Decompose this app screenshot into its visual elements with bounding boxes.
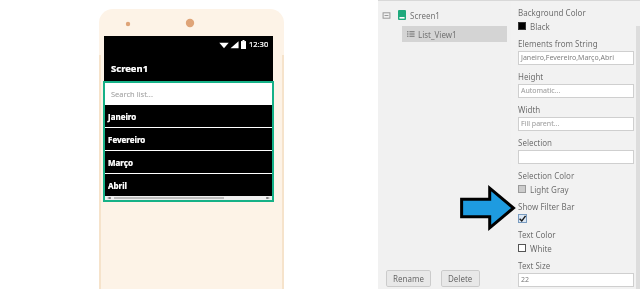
button[interactable]: Fevereiro — [105, 128, 272, 150]
staticText: 12:30 — [249, 39, 269, 49]
button[interactable]: Abril — [105, 174, 272, 196]
staticText: Março — [108, 157, 133, 168]
button[interactable]: List_View1 — [402, 26, 507, 42]
staticText: Automatic... — [521, 86, 561, 96]
staticText: Screen1 — [111, 62, 149, 75]
button[interactable]: Janeiro — [105, 105, 272, 127]
button[interactable]: Fill parent... — [518, 117, 634, 131]
staticText: Selection Color — [518, 170, 575, 181]
button[interactable]: Show Filter Bar checkbox — [518, 214, 527, 223]
staticText: 22 — [521, 275, 530, 285]
staticText: Screen1 — [410, 10, 440, 21]
staticText: Height — [518, 71, 544, 82]
staticText: Light Gray — [530, 184, 569, 195]
staticText: Elements from String — [518, 38, 598, 49]
staticText: Background Color — [518, 7, 586, 18]
staticText: Delete — [448, 273, 473, 284]
button[interactable]: Automatic... — [518, 84, 634, 98]
staticText: Janeiro — [108, 111, 137, 122]
button[interactable]: Janeiro,Fevereiro,Março,Abri — [518, 51, 634, 65]
button[interactable]: Light Gray — [518, 183, 569, 195]
staticText: Fill parent... — [521, 119, 560, 129]
staticText: Black — [530, 21, 550, 32]
button[interactable] — [518, 150, 634, 164]
staticText: List_View1 — [418, 29, 457, 40]
staticText: Abril — [108, 180, 127, 191]
staticText: White — [530, 243, 552, 254]
staticText: Selection — [518, 137, 553, 148]
staticText: Janeiro,Fevereiro,Março,Abri — [521, 53, 615, 63]
button[interactable]: Black — [518, 20, 550, 32]
button[interactable]: Delete — [441, 270, 480, 287]
staticText: Width — [518, 104, 541, 115]
button[interactable]: White — [518, 242, 552, 254]
staticText: Search list... — [111, 89, 153, 99]
button[interactable]: Março — [105, 151, 272, 173]
staticText: Text Color — [518, 229, 556, 240]
other: Pointer arrow — [460, 186, 514, 230]
button[interactable]: Screen1 — [382, 8, 440, 22]
button[interactable]: Search list... — [105, 83, 272, 104]
staticText: Text Size — [518, 260, 551, 271]
staticText: Fevereiro — [108, 134, 146, 145]
button[interactable]: Rename — [386, 270, 431, 287]
staticText: Show Filter Bar — [518, 201, 575, 212]
button[interactable]: 22 — [518, 273, 634, 287]
staticText: Rename — [393, 273, 424, 284]
